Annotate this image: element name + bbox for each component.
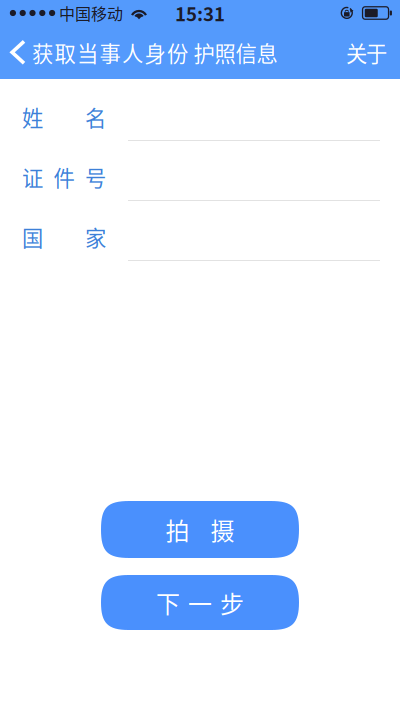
staticText: 家 <box>85 222 106 252</box>
staticText: 身 <box>144 37 165 68</box>
button[interactable]: 获 <box>0 26 191 79</box>
staticText: 中国移动 <box>59 1 123 25</box>
staticText: 份 <box>167 37 188 68</box>
staticText: 摄 <box>210 512 234 547</box>
staticText: 步 <box>220 585 244 620</box>
staticText: 事 <box>99 37 120 68</box>
staticText: 证 <box>22 162 43 192</box>
staticText: 息 <box>256 37 277 68</box>
staticText: 护 <box>193 37 214 68</box>
staticText: 姓 <box>22 102 43 132</box>
staticText: 国 <box>22 222 43 252</box>
staticText: 当 <box>77 37 98 68</box>
button[interactable]: 护 <box>191 26 277 79</box>
staticText: 关 <box>346 37 367 68</box>
staticText: 拍 <box>165 512 189 547</box>
staticText: 号 <box>85 162 106 192</box>
staticText: 信 <box>235 37 256 68</box>
staticText: 下 <box>156 585 180 620</box>
button[interactable]: 关 <box>346 26 400 79</box>
button[interactable]: 拍 <box>101 501 299 558</box>
button[interactable]: 下 <box>101 575 299 630</box>
staticText: 取 <box>54 37 75 68</box>
staticText: 15:31 <box>175 0 225 26</box>
staticText: 名 <box>85 102 106 132</box>
staticText: 一 <box>188 585 212 620</box>
staticText: 照 <box>214 37 235 68</box>
staticText: 件 <box>53 162 74 192</box>
staticText: 人 <box>122 37 143 68</box>
staticText: 获 <box>32 37 53 68</box>
staticText: 于 <box>366 37 387 68</box>
